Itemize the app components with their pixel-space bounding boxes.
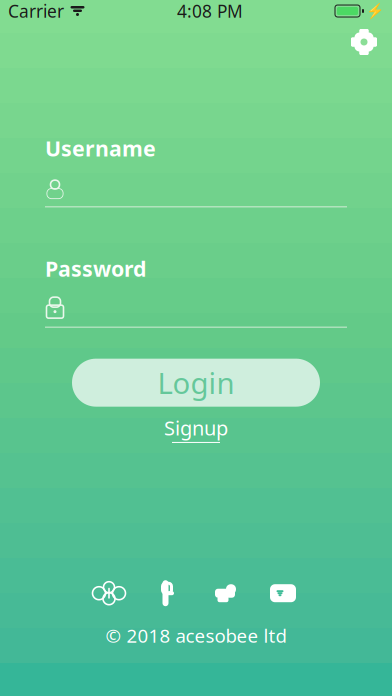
button[interactable]: Signup [164, 417, 228, 441]
staticText: 4:08 PM [177, 0, 243, 22]
staticText: Password [45, 254, 146, 283]
staticText: Signup [164, 414, 228, 441]
button[interactable]: YouTube [267, 577, 299, 609]
staticText: Carrier [8, 0, 64, 22]
staticText: Username [45, 134, 156, 162]
button[interactable]: Acesobee [93, 577, 125, 609]
staticText: ⚡ [366, 3, 384, 19]
button[interactable]: Settings [342, 22, 386, 62]
button[interactable]: Twitter [209, 577, 241, 609]
staticText: Login [157, 363, 234, 402]
button[interactable]: Facebook [151, 577, 183, 609]
button[interactable]: Login [72, 359, 320, 407]
staticText: © 2018 acesobee ltd [105, 623, 286, 648]
